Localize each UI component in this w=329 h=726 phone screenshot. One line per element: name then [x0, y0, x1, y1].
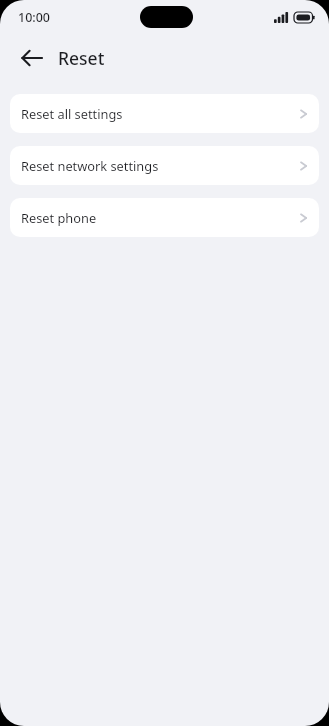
- staticText: Reset all settings: [21, 105, 299, 122]
- staticText: Reset: [58, 46, 105, 70]
- staticText: Reset network settings: [21, 157, 299, 174]
- staticText: 10:00: [18, 9, 51, 26]
- button[interactable]: Reset phone: [10, 198, 319, 237]
- button[interactable]: Reset network settings: [10, 146, 319, 185]
- staticText: Reset phone: [21, 209, 299, 226]
- button[interactable]: Back: [10, 36, 54, 80]
- button[interactable]: Reset all settings: [10, 94, 319, 133]
